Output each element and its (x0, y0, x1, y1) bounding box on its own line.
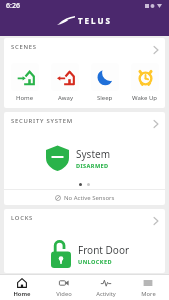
button[interactable]: Home (4, 63, 45, 102)
staticText: More (141, 290, 156, 298)
button[interactable]: System (4, 145, 165, 171)
staticText: SECURITY SYSTEM (11, 117, 73, 125)
button[interactable]: Sleep (85, 63, 125, 102)
button[interactable]: More (127, 275, 169, 300)
staticText: Sleep (97, 94, 113, 102)
button[interactable]: Home (0, 275, 43, 300)
staticText: Home (13, 290, 31, 298)
staticText: Home (16, 94, 34, 102)
button[interactable]: SECURITY SYSTEM (4, 112, 165, 130)
button[interactable]: Front Door (4, 240, 165, 268)
button[interactable]: LOCKS (4, 209, 165, 227)
staticText: No Active Sensors (64, 194, 115, 202)
staticText: Activity (96, 290, 116, 298)
other: Open SCENES (153, 46, 159, 54)
staticText: DISARMED (76, 162, 109, 170)
staticText: TELUS (78, 15, 112, 26)
other: Open SECURITY SYSTEM (153, 120, 159, 128)
button[interactable]: Away (45, 63, 85, 102)
other: Open LOCKS (153, 217, 159, 225)
staticText: Wake Up (132, 94, 158, 102)
staticText: Video (56, 290, 72, 298)
staticText: UNLOCKED (78, 258, 112, 266)
staticText: 6:26 (6, 1, 20, 11)
staticText: SCENES (11, 43, 37, 51)
staticText: Front Door (78, 243, 130, 257)
button[interactable]: SCENES (4, 38, 165, 56)
button[interactable]: Activity (85, 275, 127, 300)
staticText: Away (58, 94, 73, 102)
button[interactable]: Wake Up (125, 63, 165, 102)
button[interactable]: Video (43, 275, 85, 300)
staticText: System (76, 147, 110, 161)
staticText: LOCKS (11, 214, 34, 222)
